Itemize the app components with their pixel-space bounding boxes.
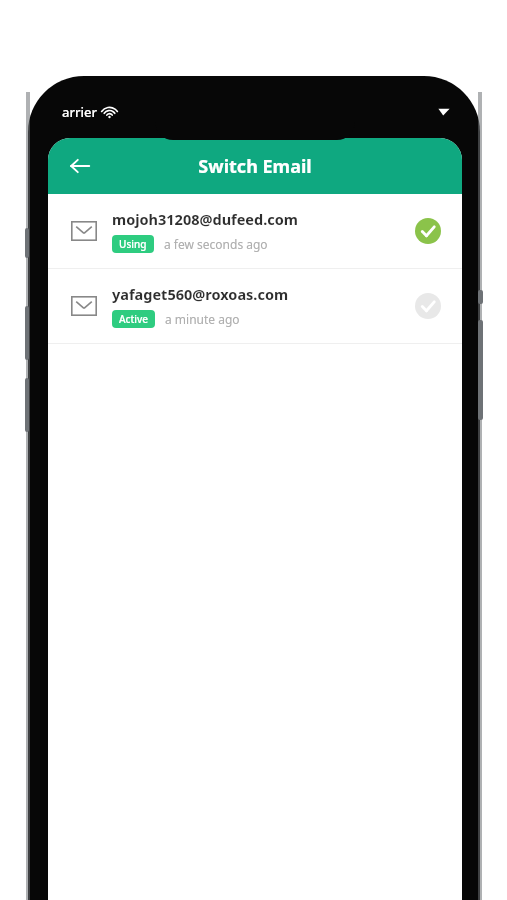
button[interactable]: yafaget560@roxoas.com bbox=[48, 269, 462, 343]
staticText: a few seconds ago bbox=[164, 236, 268, 252]
staticText: mojoh31208@dufeed.com bbox=[112, 209, 298, 229]
staticText: Using bbox=[119, 237, 147, 251]
button[interactable]: Back bbox=[58, 144, 102, 188]
staticText: Active bbox=[119, 312, 148, 326]
staticText: arrier bbox=[62, 103, 97, 121]
button[interactable]: Selected bbox=[415, 218, 441, 244]
staticText: Switch Email bbox=[48, 154, 462, 179]
staticText: a minute ago bbox=[165, 311, 240, 327]
button[interactable]: Not selected bbox=[415, 293, 441, 319]
staticText: yafaget560@roxoas.com bbox=[112, 284, 289, 304]
button[interactable]: mojoh31208@dufeed.com bbox=[48, 194, 462, 268]
